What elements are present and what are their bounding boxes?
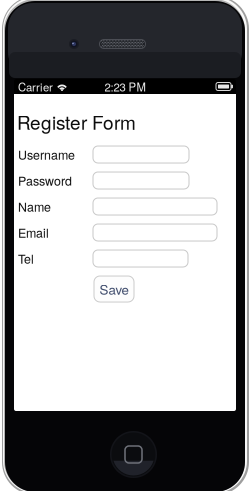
staticText: Password [18, 172, 72, 189]
button[interactable]: Home [110, 431, 157, 478]
staticText: Tel [18, 250, 34, 267]
staticText: 2:23 PM [104, 78, 145, 95]
staticText: Email [18, 224, 49, 241]
staticText: Username [18, 146, 75, 163]
staticText: Save [99, 279, 128, 299]
staticText: Carrier [18, 78, 53, 95]
staticText: Name [18, 198, 51, 215]
button[interactable]: Save [94, 276, 134, 302]
staticText: Register Form [17, 108, 136, 135]
